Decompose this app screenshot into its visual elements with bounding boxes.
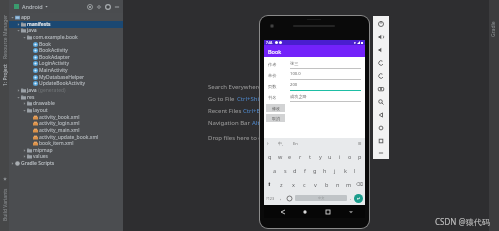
button[interactable]: l bbox=[350, 163, 360, 177]
button[interactable]: y bbox=[315, 149, 325, 163]
button[interactable]: s bbox=[280, 163, 290, 177]
button[interactable]: layout bbox=[9, 107, 123, 114]
button[interactable]: Home bbox=[300, 207, 309, 216]
button[interactable]: Home bbox=[373, 121, 389, 134]
button[interactable]: LoginActivity bbox=[9, 60, 123, 67]
button[interactable]: 单价 bbox=[264, 70, 365, 81]
button[interactable]: Rotate left bbox=[373, 56, 389, 69]
button[interactable]: Zoom bbox=[373, 95, 389, 108]
button[interactable]: Screenshot bbox=[373, 82, 389, 95]
button[interactable]: a bbox=[269, 163, 280, 177]
button[interactable]: res bbox=[9, 94, 123, 101]
button[interactable]: Book bbox=[9, 41, 123, 48]
button[interactable]: t bbox=[305, 149, 315, 163]
button[interactable]: Power bbox=[373, 17, 389, 30]
staticText: Book bbox=[39, 41, 51, 48]
staticText: Ctrl+Shift+N bbox=[237, 95, 272, 103]
button[interactable]: BookActivity bbox=[9, 47, 123, 54]
button[interactable]: Settings bbox=[103, 2, 112, 11]
button[interactable]: Build Variants bbox=[1, 187, 9, 223]
staticText: w bbox=[278, 153, 283, 160]
staticText: MyDatabaseHelper bbox=[39, 74, 85, 81]
button[interactable]: m bbox=[343, 177, 354, 191]
button[interactable]: activity_login.xml bbox=[9, 120, 123, 127]
button[interactable]: Gradle Scripts bbox=[9, 160, 123, 167]
button[interactable]: 作者 bbox=[264, 59, 365, 70]
button[interactable]: More bbox=[373, 147, 389, 159]
button[interactable]: UpdateBookActivity bbox=[9, 80, 123, 87]
button[interactable]: manifests bbox=[9, 21, 123, 28]
button[interactable]: q bbox=[264, 149, 275, 163]
button[interactable]: mipmap bbox=[9, 147, 123, 154]
button[interactable]: Volume up bbox=[373, 30, 389, 43]
button[interactable]: Enter bbox=[354, 194, 363, 203]
button[interactable]: activity_update_book.xml bbox=[9, 134, 123, 141]
button[interactable]: activity_book.xml bbox=[9, 114, 123, 121]
button[interactable]: g bbox=[310, 163, 320, 177]
button[interactable]: BookAdapter bbox=[9, 54, 123, 61]
button[interactable]: Collapse All bbox=[85, 2, 94, 11]
button[interactable]: o bbox=[345, 149, 355, 163]
button[interactable]: 1: Project bbox=[1, 61, 9, 89]
button[interactable]: Back bbox=[373, 108, 389, 121]
button[interactable]: MyDatabaseHelper bbox=[9, 74, 123, 81]
staticText: p bbox=[358, 153, 362, 160]
staticText: 作者 bbox=[268, 62, 277, 67]
button[interactable]: b bbox=[321, 177, 332, 191]
button[interactable]: book_item.xml bbox=[9, 140, 123, 147]
button[interactable]: n bbox=[332, 177, 343, 191]
staticText: 单价 bbox=[268, 73, 277, 78]
button[interactable]: Shift bbox=[264, 177, 275, 191]
button[interactable]: Back bbox=[278, 207, 287, 216]
button[interactable]: u bbox=[325, 149, 335, 163]
button[interactable]: Resource Manager bbox=[1, 14, 9, 60]
staticText: En bbox=[293, 141, 298, 147]
button[interactable]: j bbox=[330, 163, 340, 177]
button[interactable]: c bbox=[299, 177, 310, 191]
button[interactable]: Hide keyboard bbox=[346, 207, 355, 216]
button[interactable]: Gradle bbox=[489, 4, 497, 54]
button[interactable]: 修改 bbox=[266, 104, 285, 112]
button[interactable]: Volume down bbox=[373, 43, 389, 56]
button[interactable]: p bbox=[355, 149, 365, 163]
button[interactable]: com.example.book bbox=[9, 34, 123, 41]
button[interactable]: h bbox=[320, 163, 330, 177]
button[interactable]: Rotate right bbox=[373, 69, 389, 82]
button[interactable]: f bbox=[300, 163, 310, 177]
button[interactable]: Favorites bbox=[1, 175, 9, 183]
button[interactable]: drawable bbox=[9, 100, 123, 107]
staticText: Alt+Home bbox=[252, 119, 281, 127]
button[interactable]: 页数 bbox=[264, 81, 365, 92]
button[interactable]: app bbox=[9, 14, 123, 21]
button[interactable]: 书名 bbox=[264, 92, 365, 103]
staticText: 1: Project bbox=[2, 64, 9, 86]
button[interactable]: activity_main.xml bbox=[9, 127, 123, 134]
staticText: Gradle bbox=[490, 21, 497, 37]
button[interactable]: Hide bbox=[112, 2, 121, 11]
button[interactable]: Expand All bbox=[94, 2, 103, 11]
button[interactable]: Recents bbox=[323, 207, 332, 216]
staticText: com.example.book bbox=[33, 34, 78, 41]
button[interactable]: Backspace bbox=[354, 177, 365, 191]
button[interactable]: i bbox=[335, 149, 345, 163]
staticText: ▾ bbox=[354, 41, 356, 45]
staticText: activity_login.xml bbox=[39, 120, 80, 127]
staticText: Search Everywhere bbox=[208, 83, 262, 91]
button[interactable]: r bbox=[295, 149, 305, 163]
button[interactable]: v bbox=[310, 177, 321, 191]
button[interactable]: d bbox=[290, 163, 300, 177]
button[interactable]: java bbox=[9, 27, 123, 34]
button[interactable]: z bbox=[275, 177, 287, 191]
button[interactable]: w bbox=[275, 149, 285, 163]
button[interactable]: values bbox=[9, 153, 123, 160]
button[interactable]: java bbox=[9, 87, 123, 94]
staticText: m bbox=[346, 181, 352, 188]
button[interactable]: k bbox=[340, 163, 350, 177]
button[interactable]: Overview bbox=[373, 134, 389, 147]
button[interactable]: 取消 bbox=[266, 114, 285, 122]
button[interactable]: Space bbox=[295, 195, 347, 201]
button[interactable]: x bbox=[287, 177, 299, 191]
button[interactable]: MainActivity bbox=[9, 67, 123, 74]
button[interactable]: ?123 bbox=[266, 196, 275, 201]
button[interactable]: e bbox=[285, 149, 295, 163]
